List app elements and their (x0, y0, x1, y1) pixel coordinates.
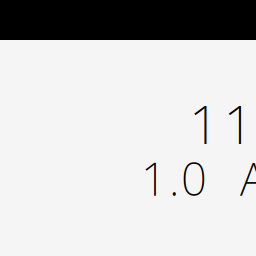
staticText: A (240, 148, 256, 208)
staticText: 11 (189, 88, 253, 159)
staticText: 1.0 (141, 148, 207, 208)
